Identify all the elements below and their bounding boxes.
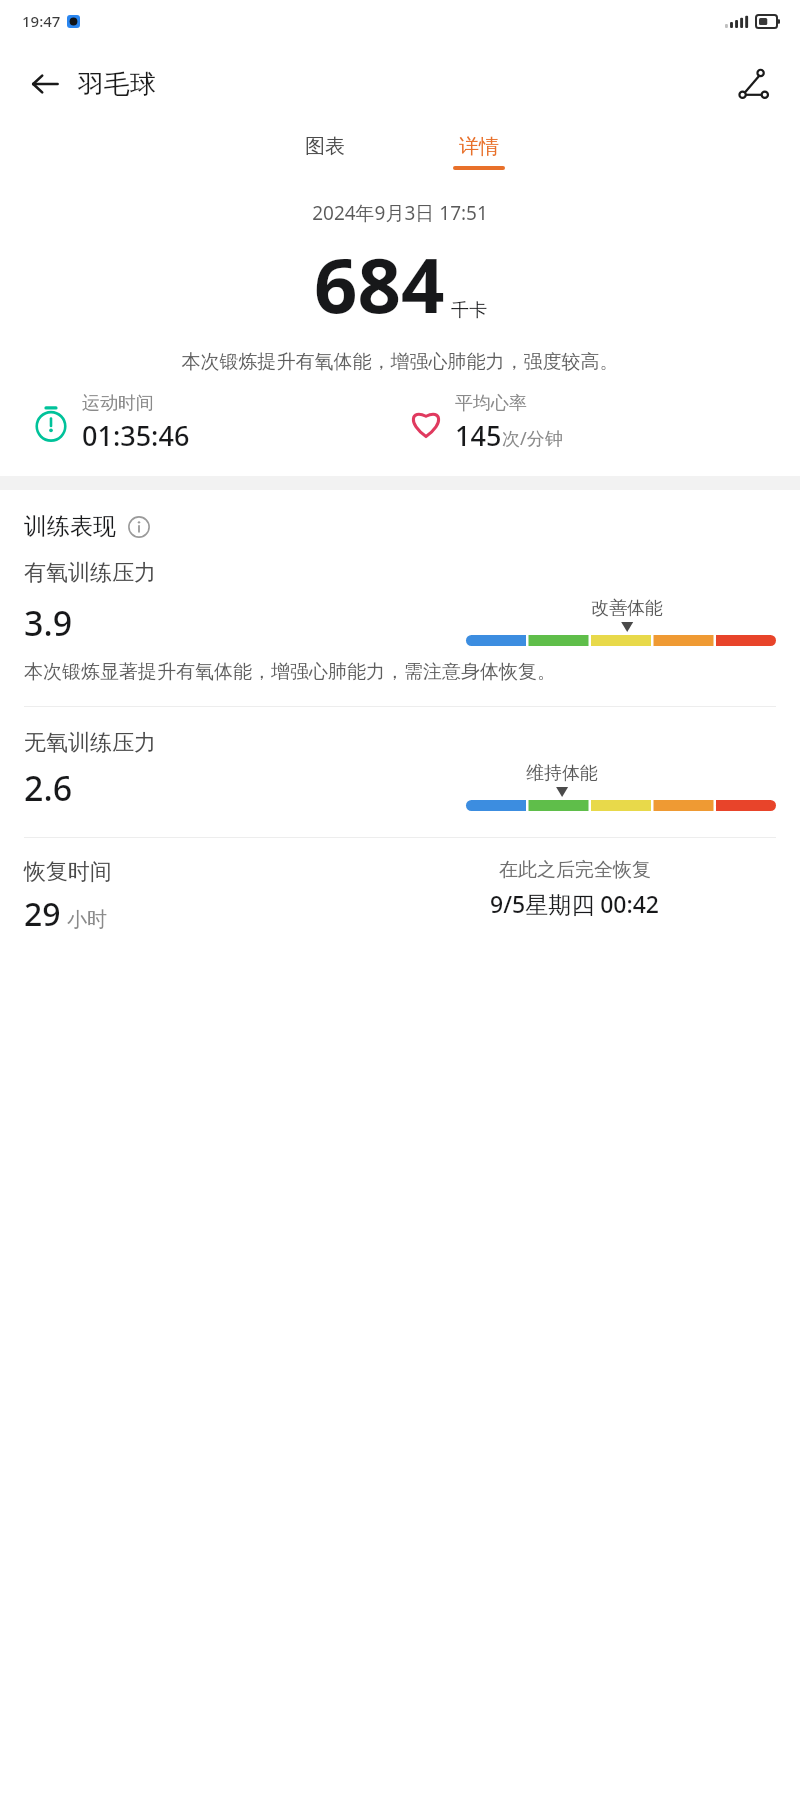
staticText: 小时 [67,907,107,932]
staticText: 29 [24,892,61,936]
staticText: 改善体能 [591,597,663,620]
button[interactable]: Info [126,514,152,540]
staticText: 本次锻炼显著提升有氧体能，增强心肺能力，需注意身体恢复。 [24,660,556,684]
staticText: 羽毛球 [78,68,156,101]
button[interactable]: Share [730,60,778,108]
button[interactable]: 图表 [279,126,371,167]
staticText: 有氧训练压力 [24,559,156,587]
staticText: 平均心率 [455,392,527,415]
staticText: 145 [455,417,502,454]
staticText: 运动时间 [82,392,154,415]
staticText: 恢复时间 [24,858,112,886]
button[interactable]: 详情 [427,126,531,178]
staticText: 2.6 [24,765,73,811]
staticText: 本次锻炼提升有氧体能，增强心肺能力，强度较高。 [22,350,778,374]
staticText: 图表 [305,134,345,159]
staticText: 01:35:46 [82,417,190,454]
staticText: 在此之后完全恢复 [499,858,651,882]
staticText: 维持体能 [526,762,598,785]
staticText: 次/分钟 [502,426,563,451]
staticText: 684 [314,232,445,336]
button[interactable]: Back [18,57,72,111]
staticText: 详情 [459,134,499,159]
staticText: 9/5星期四 00:42 [490,888,660,919]
staticText: 训练表现 [24,512,116,541]
staticText: 千卡 [451,299,487,322]
staticText: 19:47 [22,11,61,31]
staticText: 2024年9月3日 17:51 [0,200,800,226]
staticText: 无氧训练压力 [24,729,156,757]
staticText: 3.9 [24,600,73,646]
